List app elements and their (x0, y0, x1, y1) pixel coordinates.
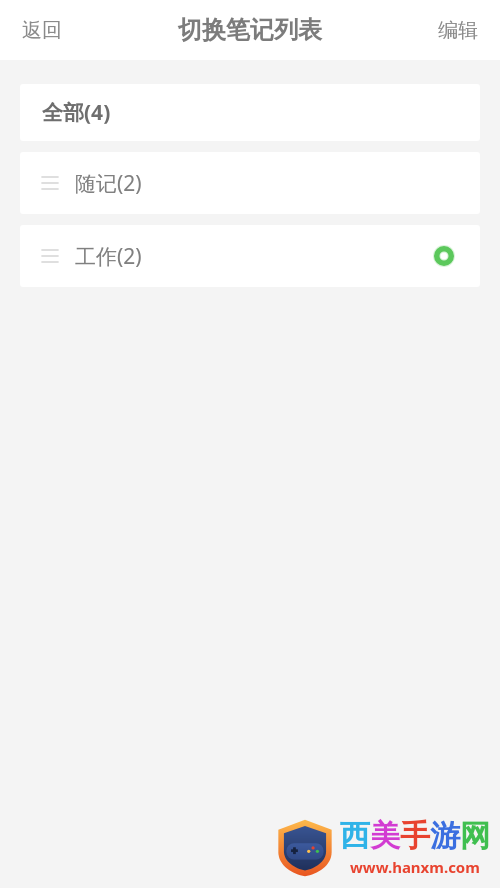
button[interactable]: 全部(4) (20, 84, 480, 141)
button[interactable]: 编辑 (424, 10, 492, 51)
staticText: 西 (340, 817, 370, 855)
staticText: 切换笔记列表 (178, 15, 322, 45)
staticText: 工作(2) (75, 242, 142, 271)
staticText: 随记(2) (75, 169, 142, 198)
staticText: 手 (400, 817, 430, 855)
staticText: 编辑 (438, 18, 478, 43)
staticText: 美 (370, 817, 400, 855)
button[interactable]: 返回 (8, 10, 76, 51)
button[interactable]: Reorder (20, 225, 480, 287)
button[interactable]: Reorder (20, 152, 480, 214)
other: Reorder (38, 171, 62, 195)
staticText: 全部(4) (42, 98, 111, 127)
staticText: 游 (430, 817, 460, 855)
other: Reorder (38, 244, 62, 268)
staticText: 返回 (22, 18, 62, 43)
staticText: www.hanxm.com (350, 857, 480, 877)
staticText: 网 (460, 817, 490, 855)
